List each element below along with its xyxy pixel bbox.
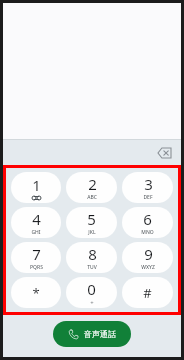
button[interactable]: Backspace bbox=[153, 142, 175, 164]
staticText: 6 bbox=[143, 209, 152, 229]
staticText: 7 bbox=[32, 244, 41, 264]
staticText: GHI bbox=[31, 229, 41, 236]
staticText: 8 bbox=[88, 244, 97, 264]
staticText: JKL bbox=[88, 229, 96, 236]
staticText: 4 bbox=[32, 209, 41, 229]
staticText: MNO bbox=[141, 229, 154, 236]
staticText: * bbox=[32, 284, 40, 302]
button[interactable]: 6 bbox=[122, 207, 173, 238]
staticText: 3 bbox=[144, 174, 153, 194]
button[interactable]: 7 bbox=[11, 242, 61, 273]
staticText: 2 bbox=[88, 174, 97, 194]
button[interactable]: 9 bbox=[122, 242, 173, 273]
staticText: 9 bbox=[144, 244, 153, 264]
staticText: 1 bbox=[32, 175, 41, 195]
button[interactable]: 音声通話 bbox=[53, 321, 131, 347]
staticText: 5 bbox=[87, 209, 96, 229]
staticText: 0 bbox=[87, 279, 96, 299]
button[interactable]: # bbox=[122, 277, 173, 308]
button[interactable]: 2 bbox=[66, 172, 117, 203]
button[interactable]: 4 bbox=[11, 207, 61, 238]
button[interactable]: 1 bbox=[11, 172, 61, 203]
staticText: WXYZ bbox=[141, 264, 155, 271]
staticText: + bbox=[90, 299, 94, 307]
staticText: DEF bbox=[143, 194, 153, 201]
button[interactable]: 0 bbox=[66, 277, 117, 308]
button[interactable]: 8 bbox=[66, 242, 117, 273]
button[interactable]: * bbox=[11, 277, 61, 308]
staticText: PQRS bbox=[30, 264, 43, 271]
staticText: TUV bbox=[87, 264, 97, 271]
staticText: 音声通話 bbox=[84, 329, 116, 339]
button[interactable]: 3 bbox=[122, 172, 173, 203]
staticText: ABC bbox=[87, 194, 97, 201]
staticText: # bbox=[143, 284, 152, 302]
button[interactable]: 5 bbox=[66, 207, 117, 238]
